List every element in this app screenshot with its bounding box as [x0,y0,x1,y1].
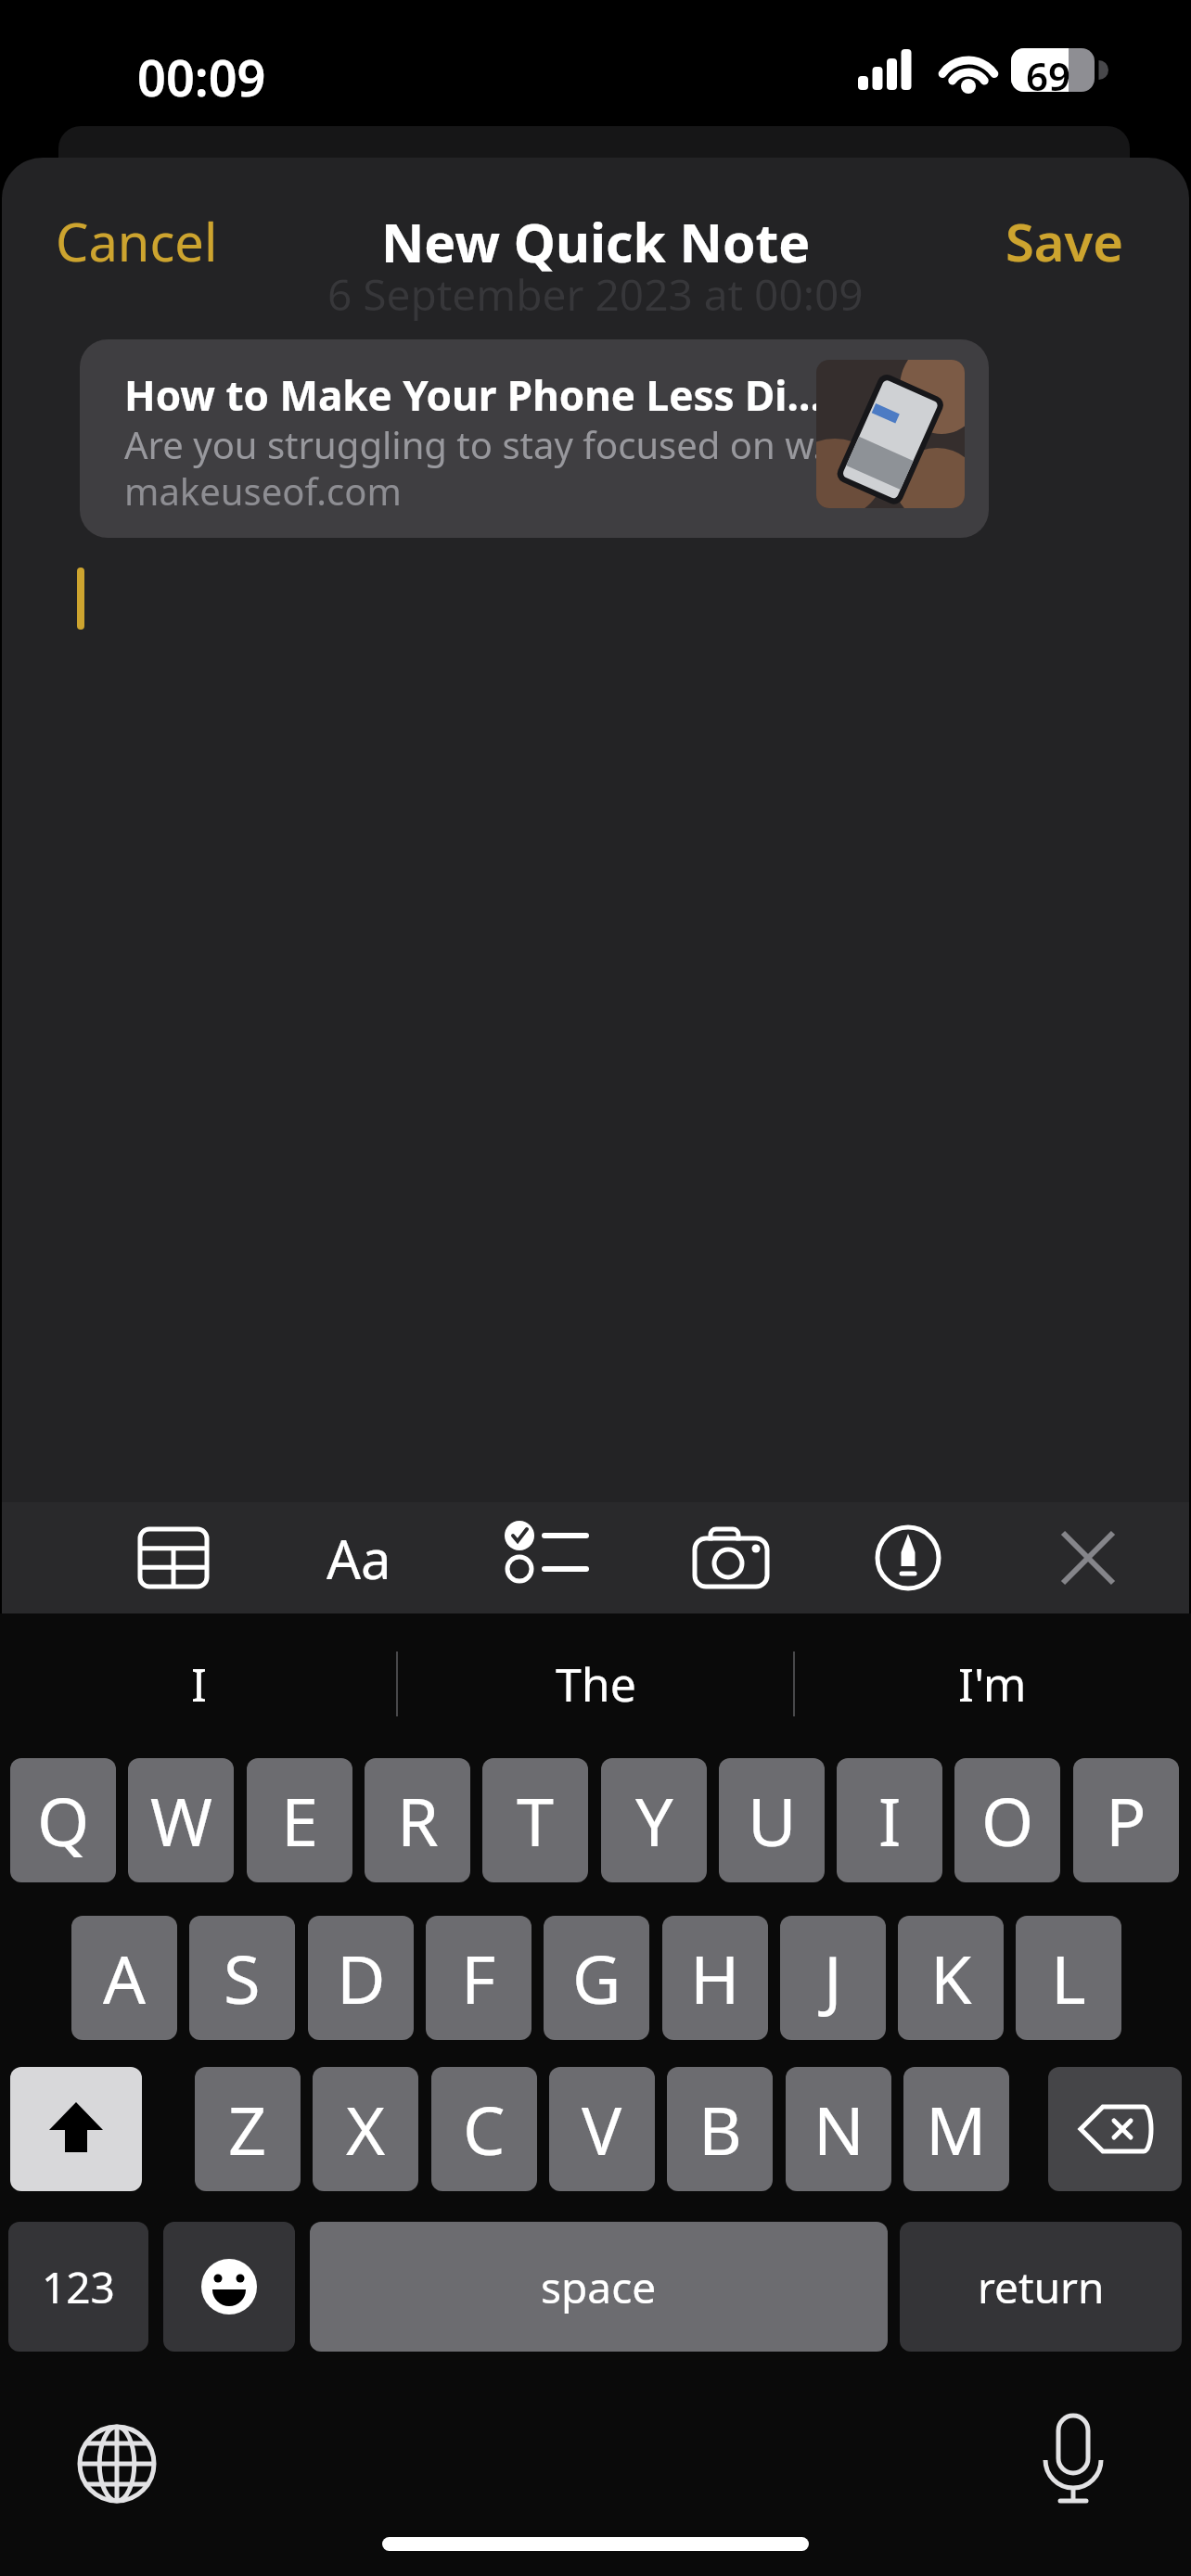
button[interactable]: M [903,2067,1009,2191]
staticText: space [541,2258,657,2316]
button[interactable] [70,2417,163,2510]
button[interactable]: How to Make Your Phone Less Di… [80,339,989,538]
staticText: return [978,2258,1105,2316]
button[interactable]: N [786,2067,891,2191]
staticText: S [224,1932,261,2023]
button[interactable] [1025,2406,1127,2518]
staticText: C [463,2084,506,2174]
button[interactable]: K [898,1916,1004,2040]
staticText: 6 September 2023 at 00:09 [327,265,864,324]
button[interactable]: 123 [8,2222,148,2352]
button[interactable]: I [837,1758,942,1882]
button[interactable]: R [365,1758,470,1882]
staticText: New Quick Note [381,206,811,278]
button[interactable]: W [128,1758,234,1882]
staticText: 123 [42,2258,115,2316]
staticText: W [150,1775,212,1866]
button[interactable]: I [0,1632,397,1736]
button[interactable]: I'm [794,1632,1191,1736]
button[interactable]: C [431,2067,537,2191]
staticText: How to Make Your Phone Less Di… [124,367,820,423]
staticText: F [461,1932,496,2023]
button[interactable] [660,1521,800,1595]
button[interactable] [10,2067,142,2191]
staticText: I [191,1652,207,1715]
staticText: 00:09 [137,43,266,111]
button[interactable]: O [954,1758,1060,1882]
button[interactable] [1022,1521,1152,1595]
staticText: Aa [327,1522,391,1595]
staticText: M [926,2084,987,2174]
button[interactable] [163,2222,295,2352]
staticText: T [517,1775,555,1866]
button[interactable]: D [308,1916,414,2040]
staticText: D [337,1932,386,2023]
staticText: R [397,1775,439,1866]
button[interactable]: U [719,1758,825,1882]
button[interactable] [113,1521,234,1595]
staticText: Y [635,1775,673,1866]
button[interactable]: Save [1005,206,1123,276]
staticText: E [281,1775,319,1866]
staticText: makeuseof.com [124,465,820,516]
button[interactable]: B [667,2067,773,2191]
button[interactable]: V [549,2067,655,2191]
button[interactable]: X [313,2067,418,2191]
staticText: Save [1005,206,1123,276]
button[interactable]: space [310,2222,888,2352]
button[interactable]: T [482,1758,588,1882]
button[interactable]: S [189,1916,295,2040]
button[interactable]: J [780,1916,886,2040]
staticText: G [572,1932,621,2023]
button[interactable]: The [397,1632,794,1736]
staticText: Z [228,2084,267,2174]
staticText: N [813,2084,864,2174]
button[interactable]: F [426,1916,531,2040]
button[interactable]: Y [601,1758,707,1882]
button[interactable] [475,1521,614,1595]
staticText: Cancel [56,206,218,276]
staticText: J [824,1932,842,2023]
staticText: A [103,1932,147,2023]
staticText: B [698,2084,742,2174]
button[interactable]: Aa [289,1511,429,1604]
staticText: V [582,2084,622,2174]
staticText: O [981,1775,1034,1866]
staticText: P [1106,1775,1146,1866]
button[interactable] [841,1521,980,1595]
staticText: Are you struggling to stay focused on w… [124,419,820,469]
button[interactable]: A [71,1916,177,2040]
button[interactable]: Z [195,2067,301,2191]
staticText: L [1051,1932,1086,2023]
button[interactable]: return [900,2222,1182,2352]
staticText: X [346,2084,386,2174]
button[interactable]: Cancel [39,206,201,276]
button[interactable]: Q [10,1758,116,1882]
staticText: I'm [958,1652,1027,1715]
button[interactable]: H [662,1916,768,2040]
button[interactable] [1048,2067,1182,2191]
button[interactable]: G [544,1916,649,2040]
button[interactable]: P [1073,1758,1179,1882]
staticText: U [748,1775,797,1866]
staticText: The [556,1652,636,1715]
button[interactable]: L [1016,1916,1121,2040]
staticText: H [690,1932,740,2023]
staticText: K [930,1932,972,2023]
button[interactable]: E [247,1758,352,1882]
staticText: Q [37,1775,90,1866]
staticText: 69 [1026,49,1071,102]
staticText: I [878,1775,902,1866]
